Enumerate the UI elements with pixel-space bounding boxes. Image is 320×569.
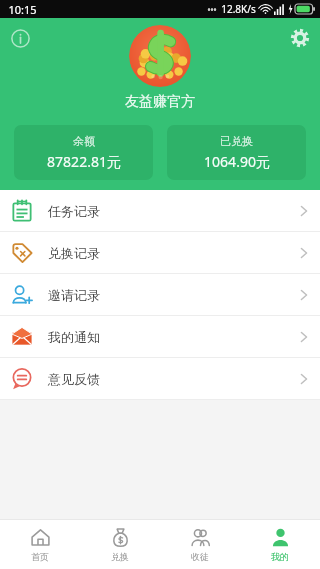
button[interactable]: 我的 — [240, 520, 320, 569]
staticText: 兑换 — [111, 551, 129, 562]
button[interactable]: 首页 — [0, 520, 80, 569]
staticText: 已兑换 — [220, 134, 253, 148]
button[interactable]: 兑换记录 — [0, 232, 320, 273]
staticText: 任务记录 — [48, 203, 100, 219]
button[interactable]: Settings — [287, 25, 313, 51]
staticText: 邀请记录 — [48, 287, 100, 303]
staticText: 87822.81元 — [47, 152, 121, 171]
button[interactable]: 收徒 — [160, 520, 240, 569]
staticText: 收徒 — [191, 551, 209, 562]
staticText: 兑换记录 — [48, 245, 100, 261]
staticText: 我的 — [271, 551, 289, 562]
button[interactable]: Information — [7, 25, 33, 51]
button[interactable]: 已兑换 — [167, 125, 306, 180]
button[interactable]: 兑换 — [80, 520, 160, 569]
staticText: 意见反馈 — [48, 371, 100, 387]
staticText: 1064.90元 — [204, 152, 270, 171]
staticText: 余额 — [73, 134, 95, 148]
button[interactable]: 意见反馈 — [0, 358, 320, 399]
staticText: 12.8K/s — [221, 2, 256, 16]
staticText: 10:15 — [8, 2, 37, 17]
button[interactable] — [129, 25, 191, 87]
button[interactable]: 任务记录 — [0, 190, 320, 231]
staticText: 友益赚官方 — [125, 93, 195, 111]
button[interactable]: 我的通知 — [0, 316, 320, 357]
staticText: ••• — [207, 4, 217, 15]
button[interactable]: 邀请记录 — [0, 274, 320, 315]
staticText: 首页 — [31, 551, 49, 562]
staticText: 我的通知 — [48, 329, 100, 345]
button[interactable]: 余额 — [14, 125, 153, 180]
